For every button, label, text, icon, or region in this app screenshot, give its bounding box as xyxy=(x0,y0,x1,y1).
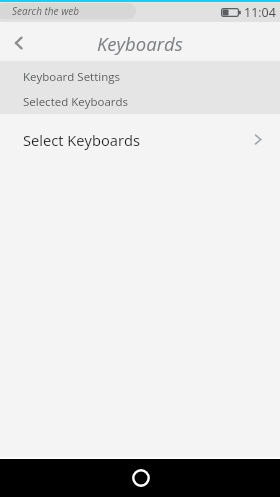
staticText: Keyboards xyxy=(97,31,183,56)
staticText: Selected Keyboards xyxy=(23,94,129,110)
staticText: 11:04 xyxy=(244,4,276,21)
staticText: Search the web xyxy=(12,4,80,18)
button[interactable]: Back xyxy=(0,24,37,61)
button[interactable]: Keyboard Settings xyxy=(0,61,280,87)
button[interactable]: Search the web xyxy=(0,3,136,19)
button[interactable]: Selected Keyboards xyxy=(0,87,280,113)
button[interactable]: Home xyxy=(125,463,155,493)
staticText: Select Keyboards xyxy=(23,130,140,150)
staticText: Keyboard Settings xyxy=(23,69,120,85)
button[interactable]: Select Keyboards xyxy=(0,114,280,160)
